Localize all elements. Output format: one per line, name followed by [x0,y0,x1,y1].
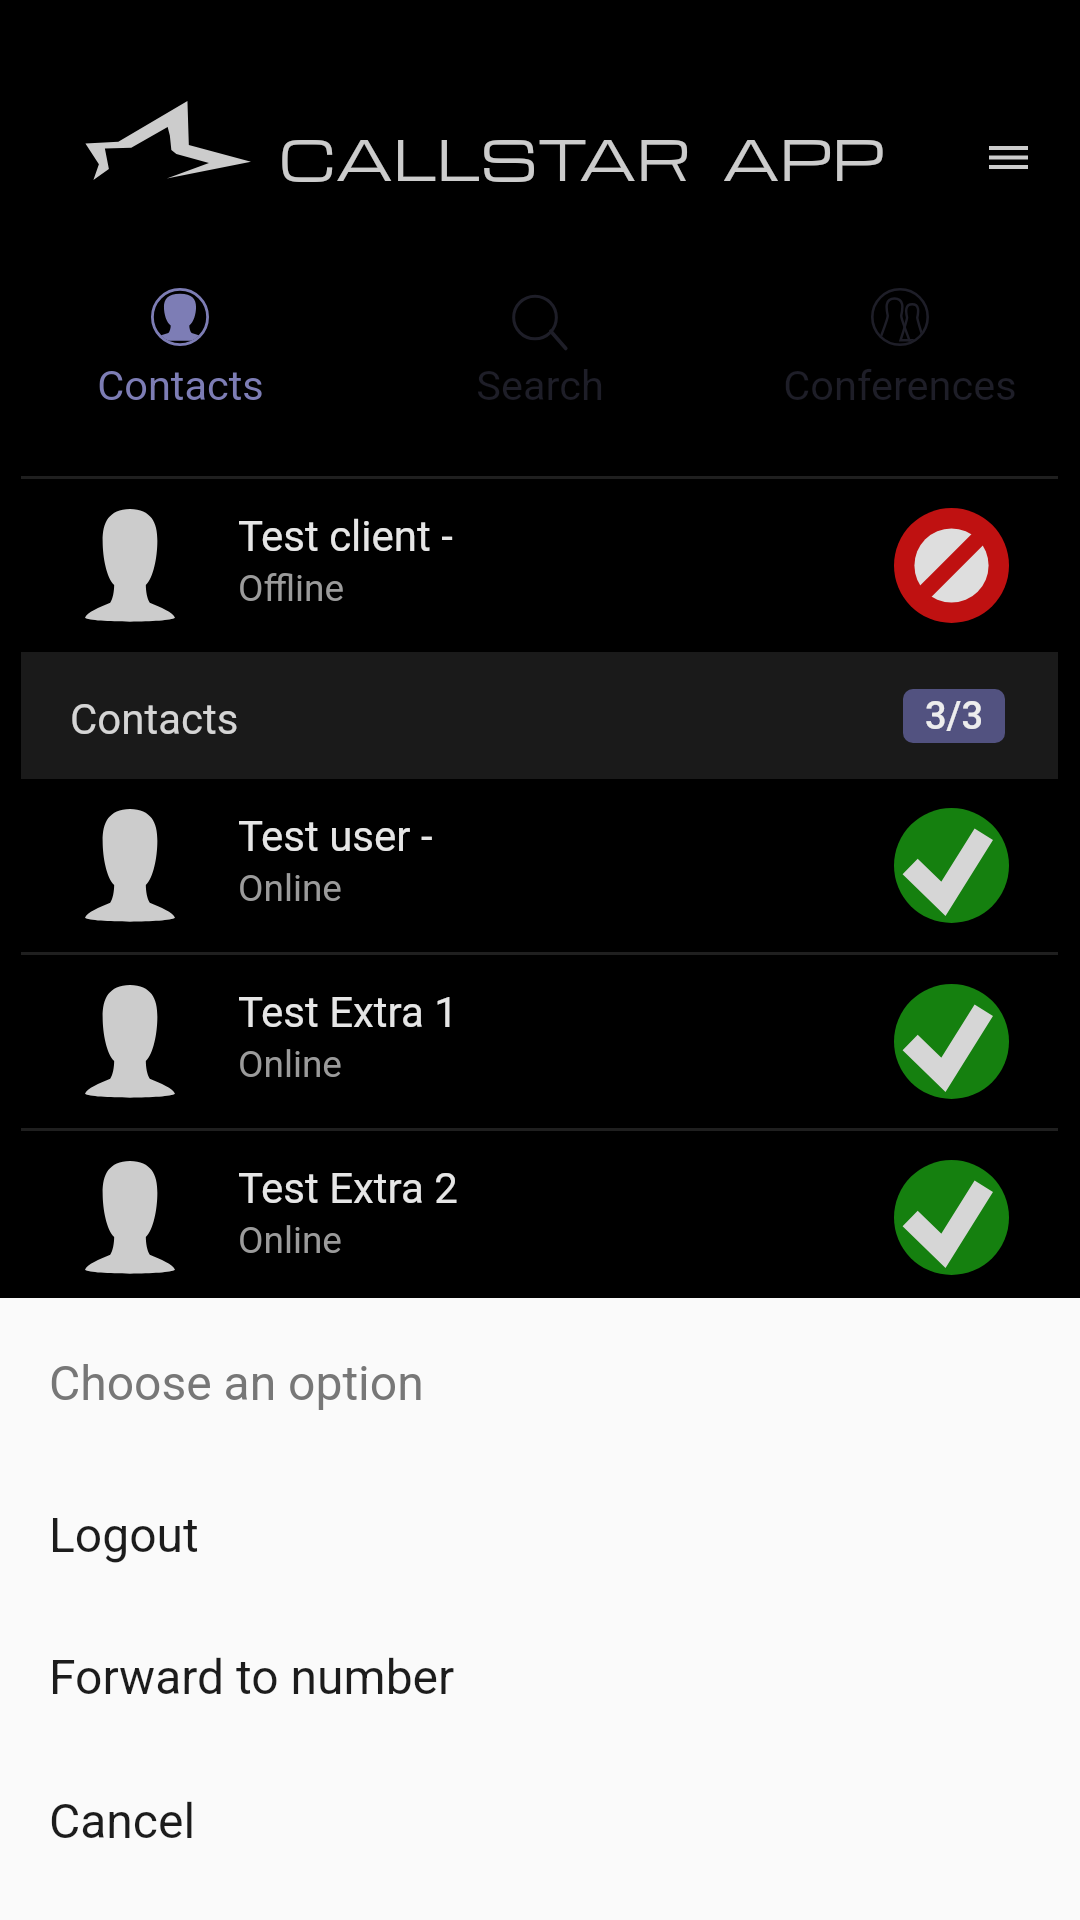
staticText: Test client - [238,512,453,561]
staticText: Test Extra 1 [238,988,458,1037]
staticText: Conferences [783,361,1017,410]
staticText: Logout [49,1507,199,1563]
staticText: CALLSTAR APP [279,119,885,196]
staticText: Offline [238,567,345,610]
button[interactable]: Menu [958,107,1058,207]
button[interactable]: Test Extra 1 [0,955,1080,1128]
button[interactable]: Search [360,260,720,476]
staticText: Contacts [70,695,239,744]
staticText: 3/3 [925,694,984,739]
button[interactable]: Test user - [0,779,1080,952]
staticText: Choose an option [49,1355,424,1411]
staticText: Contacts [97,361,264,410]
button[interactable]: Contacts [0,260,360,476]
button[interactable]: Forward to number [0,1606,1080,1748]
staticText: Test Extra 2 [238,1164,458,1213]
other: Online [894,984,1009,1099]
staticText: Online [238,1219,342,1262]
button[interactable]: Contacts [21,652,1058,779]
button[interactable]: Conferences [720,260,1080,476]
staticText: Online [238,1043,342,1086]
button[interactable]: Logout [0,1464,1080,1606]
other: Online [894,808,1009,923]
button[interactable]: Cancel [0,1750,1080,1892]
staticText: Test user - [238,812,433,861]
other: Blocked [894,508,1009,623]
staticText: Online [238,867,342,910]
button[interactable]: Test Extra 2 [0,1131,1080,1304]
button[interactable]: Test client - [0,479,1080,652]
staticText: Forward to number [49,1649,455,1705]
staticText: Cancel [49,1793,196,1849]
other: Online [894,1160,1009,1275]
staticText: Search [476,361,604,410]
